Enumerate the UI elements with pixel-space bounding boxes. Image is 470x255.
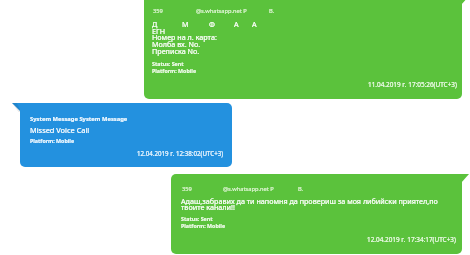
button[interactable]: 359 [171,174,462,254]
staticText: System Message System Message [30,115,128,123]
staticText: B. [269,7,275,15]
staticText: @s.whatsapp.net P [223,185,274,193]
staticText: B. [298,185,304,193]
staticText: 359 [153,7,163,15]
staticText: М [182,19,189,29]
staticText: Status: Sent Platform: Mobile [152,60,197,74]
button[interactable]: System Message System Message [20,103,232,167]
staticText: @s.whatsapp.net P [196,7,247,15]
staticText: 359 [182,185,192,193]
staticText: Platform: Mobile [30,137,75,144]
staticText: 11.04.2019 г. 17:05:26(UTC+3) [368,80,457,89]
staticText: Ф [209,19,215,29]
staticText: ЕГН Номер на л. карта: Молба вх. No. Пре… [152,26,217,57]
button[interactable]: 359 [144,0,462,99]
staticText: 12.04.2019 г. 12:38:02(UTC+3) [137,149,224,157]
staticText: Status: Sent Platform: Mobile [181,215,226,229]
staticText: А [252,19,257,29]
staticText: Адаш,забравих да ти напомня да провериш … [181,196,438,213]
staticText: Missed Voice Call [30,125,90,135]
staticText: Д [152,19,158,29]
staticText: 12.04.2019 г. 17:34:17(UTC+3) [367,235,456,244]
staticText: А [234,19,239,29]
